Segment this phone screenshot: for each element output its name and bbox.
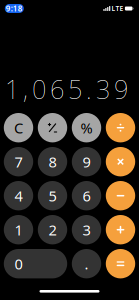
button[interactable]: 6 — [72, 181, 101, 210]
staticText: 2 — [48, 220, 56, 239]
staticText: 0 — [14, 254, 22, 273]
staticText: 8 — [48, 152, 56, 171]
button[interactable]: 2 — [38, 215, 67, 244]
staticText: . — [84, 254, 88, 273]
staticText: 6 — [82, 186, 90, 205]
staticText: 3 — [82, 220, 90, 239]
button[interactable]: % — [72, 113, 101, 142]
staticText: 7 — [14, 152, 22, 171]
staticText: 9 — [82, 152, 90, 171]
button[interactable]: Minus — [106, 181, 135, 210]
button[interactable]: Plus — [106, 215, 135, 244]
staticText: 1 — [14, 220, 22, 239]
button[interactable]: Plus minus — [38, 113, 67, 142]
button[interactable]: 7 — [4, 147, 33, 176]
button[interactable]: 4 — [4, 181, 33, 210]
staticText: 1,065.39 — [5, 72, 128, 106]
button[interactable]: 8 — [38, 147, 67, 176]
button[interactable]: Equals — [106, 249, 135, 278]
button[interactable]: Divide — [106, 113, 135, 142]
staticText: 5 — [48, 186, 56, 205]
button[interactable]: . — [72, 249, 101, 278]
staticText: C — [14, 118, 23, 137]
staticText: 9:18 — [6, 3, 23, 14]
staticText: % — [80, 118, 92, 137]
button[interactable]: 0 — [4, 249, 67, 278]
button[interactable]: 5 — [38, 181, 67, 210]
button[interactable]: C — [4, 113, 33, 142]
button[interactable]: 1 — [4, 215, 33, 244]
button[interactable]: Multiply — [106, 147, 135, 176]
staticText: 4 — [14, 186, 22, 205]
button[interactable]: 3 — [72, 215, 101, 244]
button[interactable]: 9 — [72, 147, 101, 176]
staticText: LTE — [111, 4, 123, 13]
